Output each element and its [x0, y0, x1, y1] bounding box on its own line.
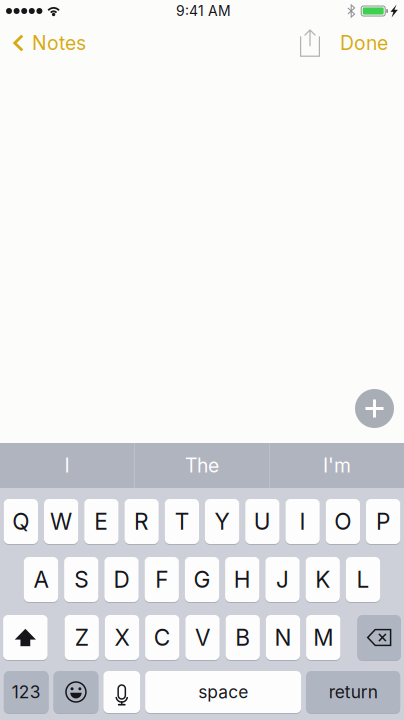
staticText: 123 — [12, 681, 41, 702]
staticText: X — [114, 624, 129, 651]
button[interactable]: O — [326, 499, 360, 544]
staticText: I — [300, 508, 306, 535]
staticText: space — [198, 681, 248, 702]
button[interactable]: space — [145, 671, 301, 713]
staticText: F — [155, 566, 168, 593]
button[interactable]: C — [145, 615, 179, 660]
button[interactable]: X — [105, 615, 139, 660]
button[interactable]: D — [104, 557, 139, 602]
button[interactable]: Q — [4, 499, 38, 544]
button[interactable]: I — [285, 499, 320, 544]
staticText: 9:41 AM — [176, 2, 231, 19]
button[interactable]: S — [64, 557, 98, 602]
staticText: Notes — [32, 31, 86, 55]
button[interactable]: Share — [288, 22, 332, 64]
staticText: W — [50, 508, 72, 535]
staticText: Done — [340, 31, 388, 55]
staticText: B — [235, 624, 250, 651]
staticText: S — [74, 566, 88, 593]
staticText: V — [195, 624, 210, 651]
staticText: R — [134, 508, 149, 535]
staticText: H — [234, 566, 251, 593]
staticText: P — [376, 508, 390, 535]
button[interactable]: 123 — [4, 671, 48, 713]
staticText: G — [193, 566, 210, 593]
staticText: I — [64, 454, 69, 477]
button[interactable]: E — [84, 499, 118, 544]
staticText: N — [274, 624, 291, 651]
button[interactable]: N — [266, 615, 300, 660]
staticText: return — [329, 681, 378, 702]
button[interactable]: K — [306, 557, 340, 602]
button[interactable]: W — [44, 499, 78, 544]
staticText: D — [113, 566, 129, 593]
button[interactable]: H — [225, 557, 259, 602]
staticText: A — [33, 566, 48, 593]
button[interactable]: F — [145, 557, 179, 602]
staticText: T — [175, 508, 189, 535]
button[interactable]: A — [24, 557, 58, 602]
button[interactable]: I — [0, 443, 134, 488]
button[interactable]: V — [185, 615, 220, 660]
button[interactable]: L — [346, 557, 380, 602]
button[interactable]: Dictate — [103, 671, 140, 713]
staticText: E — [94, 508, 108, 535]
button[interactable]: The — [135, 443, 269, 488]
button[interactable]: Emoji — [53, 671, 98, 713]
button[interactable]: Y — [205, 499, 239, 544]
staticText: M — [313, 624, 333, 651]
button[interactable]: Delete — [357, 615, 401, 660]
button[interactable]: return — [306, 671, 400, 713]
button[interactable]: B — [226, 615, 260, 660]
button[interactable]: P — [366, 499, 400, 544]
button[interactable]: Done — [340, 22, 404, 64]
button[interactable]: G — [185, 557, 219, 602]
button[interactable]: M — [306, 615, 340, 660]
staticText: Q — [12, 508, 29, 535]
staticText: Y — [215, 508, 230, 535]
button[interactable]: Shift — [3, 615, 48, 660]
staticText: J — [276, 566, 289, 593]
button[interactable]: Add attachment — [350, 384, 398, 432]
button[interactable]: T — [165, 499, 199, 544]
button[interactable]: R — [124, 499, 159, 544]
button[interactable]: Notes — [0, 22, 96, 64]
staticText: Z — [75, 624, 89, 651]
staticText: O — [334, 508, 351, 535]
staticText: U — [254, 508, 271, 535]
button[interactable]: Z — [65, 615, 99, 660]
button[interactable]: I'm — [270, 443, 404, 488]
button[interactable]: J — [265, 557, 300, 602]
button[interactable]: U — [245, 499, 279, 544]
staticText: K — [315, 566, 330, 593]
staticText: C — [154, 624, 171, 651]
staticText: I'm — [323, 454, 351, 477]
staticText: The — [185, 454, 219, 477]
staticText: L — [356, 566, 369, 593]
